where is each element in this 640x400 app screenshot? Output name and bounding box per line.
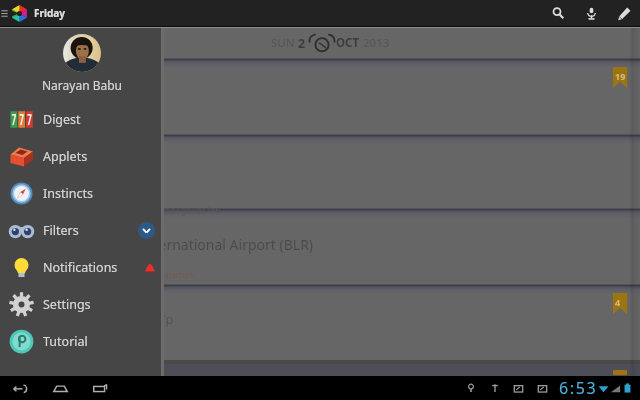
button[interactable]: 7p <box>0 293 640 360</box>
staticText: 6:53 <box>559 377 598 399</box>
button[interactable] <box>0 143 640 208</box>
staticText: Departure <box>156 269 195 280</box>
staticText: Digest <box>43 111 81 128</box>
staticText: Instincts <box>43 185 93 202</box>
button[interactable]: Applets <box>0 138 164 175</box>
button[interactable]: Expand filters <box>138 222 155 239</box>
staticText: OCT <box>336 35 363 51</box>
staticText: 19 <box>615 70 626 82</box>
staticText: 2013 <box>363 35 390 51</box>
button[interactable]: Back <box>8 376 32 400</box>
button[interactable]: Voice search <box>578 0 605 26</box>
button[interactable]: Tutorial <box>0 323 164 360</box>
button[interactable]: Kempegowda International Airport (BLR) <box>0 217 640 284</box>
staticText: Tutorial <box>43 333 88 350</box>
staticText: 2 <box>298 35 306 52</box>
staticText: Notifications <box>43 259 118 276</box>
button[interactable]: Search <box>545 0 572 26</box>
button[interactable]: 19 <box>0 67 640 134</box>
button[interactable]: Digest <box>0 101 164 138</box>
button[interactable]: Home <box>48 376 72 400</box>
staticText: Narayan Babu <box>42 77 123 93</box>
staticText: SUN <box>271 35 298 51</box>
staticText: Settings <box>43 296 91 313</box>
staticText: Applets <box>43 148 88 165</box>
button[interactable]: Filters <box>0 212 164 249</box>
staticText: Friday <box>34 6 65 20</box>
button[interactable]: Compose <box>611 0 638 26</box>
button[interactable]: Open navigation drawer <box>0 1 8 25</box>
button[interactable]: Recent apps <box>88 376 112 400</box>
button[interactable]: Instincts <box>0 175 164 212</box>
staticText: Kempegowda International Airport (BLR) <box>46 235 314 254</box>
staticText: 7p <box>158 310 174 328</box>
button[interactable]: Notifications <box>0 249 164 286</box>
staticText: 4 <box>615 296 621 308</box>
staticText: Filters <box>43 222 79 239</box>
staticText: Kempegowda Intl <box>154 205 221 216</box>
button[interactable]: Settings <box>0 286 164 323</box>
